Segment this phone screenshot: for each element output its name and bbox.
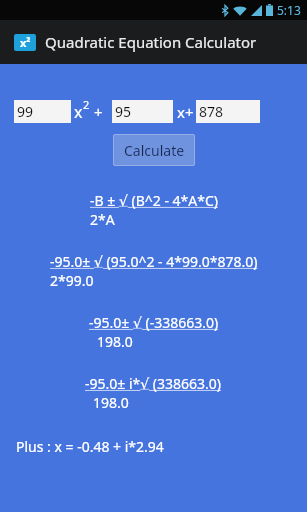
staticText: 2*A xyxy=(90,210,115,229)
staticText: -95.0± i*√ (338663.0) xyxy=(85,374,222,393)
staticText: 5:13 xyxy=(277,2,301,18)
staticText: 2 xyxy=(83,97,90,112)
staticText: -95.0± √ (-338663.0) xyxy=(89,313,219,332)
staticText: x² xyxy=(20,35,31,50)
button[interactable]: 878 xyxy=(196,100,260,123)
staticText: Calculate xyxy=(124,141,185,160)
button[interactable]: App icon xyxy=(14,34,36,51)
staticText: 2*99.0 xyxy=(50,271,94,290)
staticText: -95.0± √ (95.0^2 - 4*99.0*878.0) xyxy=(50,252,258,271)
staticText: Quadratic Equation Calculator xyxy=(45,32,257,52)
button[interactable]: Calculate xyxy=(113,134,195,166)
staticText: 198.0 xyxy=(93,393,129,412)
staticText: Plus : x = -0.48 + i*2.94 xyxy=(16,437,164,456)
staticText: + xyxy=(94,102,103,122)
staticText: -B ± √ (B^2 - 4*A*C) xyxy=(90,191,218,210)
button[interactable]: 99 xyxy=(14,100,71,123)
button[interactable]: 95 xyxy=(112,100,173,123)
staticText: 198.0 xyxy=(97,332,133,351)
staticText: x+ xyxy=(177,102,194,122)
staticText: x xyxy=(74,101,83,123)
staticText: 99 xyxy=(17,102,34,121)
staticText: 95 xyxy=(115,102,132,121)
staticText: 878 xyxy=(199,102,224,121)
